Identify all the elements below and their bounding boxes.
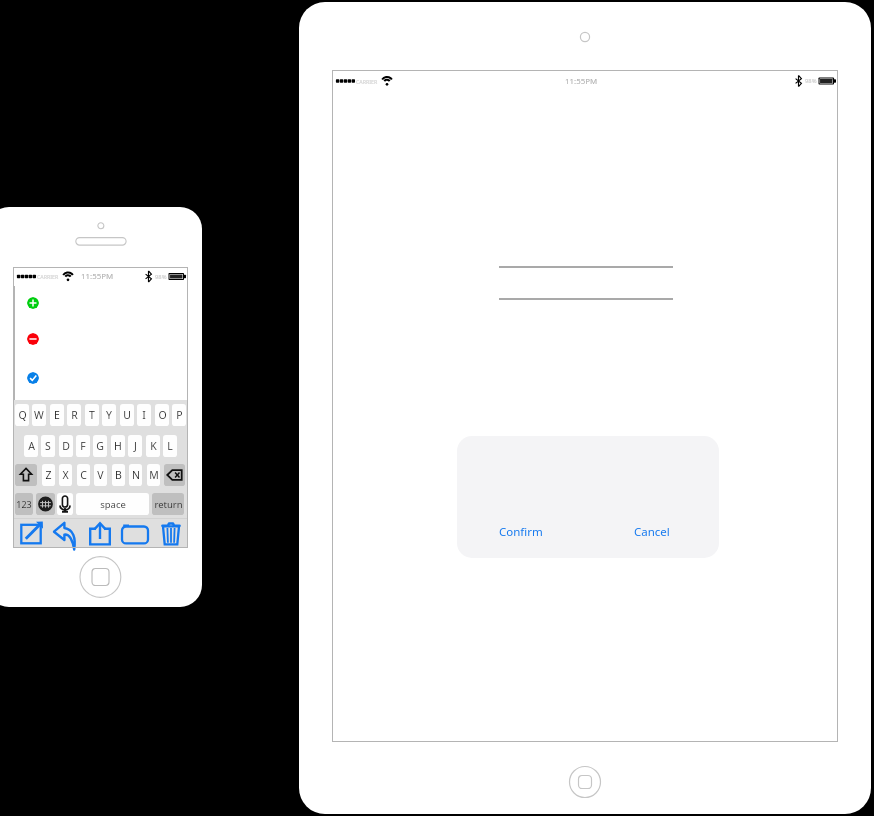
- staticText: K: [150, 439, 157, 453]
- staticText: R: [71, 408, 78, 422]
- button[interactable]: Add: [27, 297, 39, 309]
- staticText: N: [132, 468, 140, 482]
- button[interactable]: Confirm: [490, 520, 551, 544]
- staticText: 11:55PM: [81, 271, 114, 282]
- staticText: return: [154, 498, 183, 511]
- button[interactable]: Q: [15, 404, 29, 426]
- staticText: F: [80, 439, 86, 453]
- button[interactable]: Cancel: [623, 520, 681, 544]
- button[interactable]: M: [147, 464, 160, 486]
- button[interactable]: R: [67, 404, 81, 426]
- button[interactable]: J: [128, 435, 142, 457]
- staticText: J: [134, 439, 137, 453]
- button[interactable]: Y: [102, 404, 116, 426]
- button[interactable]: W: [32, 404, 46, 426]
- button[interactable]: 123: [15, 493, 33, 515]
- button[interactable]: E: [50, 404, 64, 426]
- staticText: space: [100, 498, 126, 511]
- button[interactable]: T: [85, 404, 99, 426]
- button[interactable]: Remove: [27, 333, 39, 345]
- staticText: 123: [16, 498, 32, 510]
- staticText: CARRIER: [356, 78, 378, 85]
- staticText: V: [97, 468, 104, 482]
- button[interactable]: I: [137, 404, 151, 426]
- button[interactable]: G: [93, 435, 107, 457]
- staticText: P: [176, 408, 183, 422]
- staticText: T: [89, 408, 95, 422]
- button[interactable]: D: [59, 435, 73, 457]
- button[interactable]: N: [129, 464, 142, 486]
- button[interactable]: V: [94, 464, 107, 486]
- button[interactable]: Emoji: [36, 493, 55, 515]
- button[interactable]: X: [59, 464, 72, 486]
- staticText: Q: [18, 408, 27, 422]
- button[interactable]: Compose: [17, 520, 45, 548]
- staticText: I: [142, 408, 146, 422]
- staticText: M: [149, 468, 159, 482]
- staticText: S: [45, 439, 51, 453]
- button[interactable]: return: [152, 493, 184, 515]
- staticText: X: [62, 468, 69, 482]
- button[interactable]: B: [112, 464, 125, 486]
- staticText: 98%: [805, 77, 817, 85]
- staticText: H: [114, 439, 122, 453]
- button[interactable]: O: [155, 404, 169, 426]
- button[interactable]: Share: [86, 520, 114, 548]
- staticText: W: [34, 408, 44, 422]
- button[interactable]: Done: [27, 372, 39, 384]
- staticText: G: [96, 439, 104, 453]
- button[interactable]: Z: [42, 464, 55, 486]
- button[interactable]: Backspace: [164, 464, 185, 486]
- staticText: E: [54, 408, 60, 422]
- button[interactable]: Move: [121, 520, 149, 548]
- staticText: Cancel: [634, 524, 670, 540]
- button[interactable]: K: [146, 435, 160, 457]
- staticText: C: [80, 468, 87, 482]
- button[interactable]: S: [41, 435, 55, 457]
- staticText: Confirm: [499, 524, 543, 540]
- staticText: L: [167, 439, 173, 453]
- button[interactable]: H: [111, 435, 125, 457]
- button[interactable]: A: [24, 435, 38, 457]
- button[interactable]: F: [76, 435, 90, 457]
- staticText: Z: [45, 468, 52, 482]
- button[interactable]: U: [120, 404, 134, 426]
- button[interactable]: P: [172, 404, 186, 426]
- button[interactable]: Shift: [15, 464, 37, 486]
- button[interactable]: Dictate: [57, 493, 73, 515]
- staticText: Y: [106, 408, 112, 422]
- staticText: 11:55PM: [565, 76, 598, 87]
- staticText: O: [158, 408, 167, 422]
- button[interactable]: space: [76, 493, 149, 515]
- button[interactable]: Reply: [51, 520, 79, 548]
- staticText: CARRIER: [37, 273, 59, 280]
- button[interactable]: Delete: [157, 520, 185, 548]
- staticText: 98%: [155, 273, 167, 281]
- staticText: D: [62, 439, 70, 453]
- staticText: A: [28, 439, 35, 453]
- button[interactable]: C: [77, 464, 90, 486]
- button[interactable]: L: [163, 435, 177, 457]
- staticText: B: [115, 468, 122, 482]
- staticText: U: [123, 408, 131, 422]
